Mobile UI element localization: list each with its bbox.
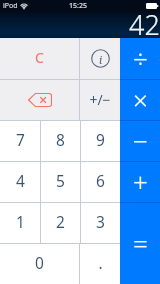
button[interactable]: 0: [0, 244, 79, 284]
button[interactable]: Info: [80, 38, 120, 79]
staticText: 15:25: [69, 1, 87, 11]
staticText: 7: [16, 129, 25, 150]
button[interactable]: 2: [41, 203, 80, 243]
button[interactable]: 8: [41, 121, 80, 161]
button[interactable]: 9: [81, 121, 120, 161]
button[interactable]: 4: [0, 162, 40, 202]
button[interactable]: Backspace: [0, 80, 79, 120]
staticText: 5: [56, 170, 65, 191]
button[interactable]: 6: [81, 162, 120, 202]
button[interactable]: 5: [41, 162, 80, 202]
button[interactable]: =: [120, 203, 160, 284]
button[interactable]: +: [120, 162, 160, 202]
staticText: 3: [96, 211, 105, 232]
staticText: ×: [133, 82, 148, 117]
staticText: C: [35, 48, 44, 67]
button[interactable]: ×: [120, 80, 160, 120]
staticText: 2: [56, 211, 65, 232]
button[interactable]: +/−: [80, 80, 120, 120]
staticText: 42: [129, 6, 160, 43]
staticText: −: [133, 123, 148, 158]
button[interactable]: 7: [0, 121, 40, 161]
staticText: 1: [16, 211, 25, 232]
staticText: +: [133, 164, 148, 199]
button[interactable]: −: [120, 121, 160, 161]
staticText: .: [98, 252, 103, 273]
staticText: ÷: [133, 40, 148, 75]
staticText: 8: [56, 129, 65, 150]
staticText: +/−: [89, 90, 111, 109]
staticText: 9: [96, 129, 105, 150]
button[interactable]: 1: [0, 203, 40, 243]
button[interactable]: 3: [81, 203, 120, 243]
staticText: 0: [35, 252, 44, 273]
staticText: =: [133, 225, 148, 260]
button[interactable]: ÷: [120, 38, 160, 79]
button[interactable]: .: [80, 244, 120, 284]
staticText: i: [99, 53, 103, 67]
staticText: 6: [96, 170, 105, 191]
button[interactable]: C: [0, 38, 79, 79]
staticText: iPod: [3, 1, 18, 11]
staticText: 4: [16, 170, 25, 191]
